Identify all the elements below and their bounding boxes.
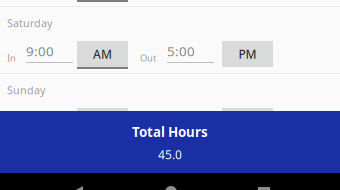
button[interactable]: Home [165,186,177,190]
staticText: AM [93,46,112,62]
staticText: 5:00 [167,42,195,60]
button[interactable]: AM [77,41,128,69]
staticText: Out [140,119,156,131]
staticText: Total Hours [132,123,208,141]
staticText: Sunday [7,83,45,97]
button[interactable]: PM [222,108,273,136]
button[interactable]: Back [74,186,83,190]
staticText: Saturday [7,16,52,30]
staticText: 9:00 [26,109,54,127]
staticText: PM [238,46,256,62]
staticText: 5:00 [167,109,195,127]
staticText: In [7,52,16,64]
button[interactable]: AM [77,108,128,136]
staticText: Out [140,52,156,64]
staticText: 9:00 [26,42,54,60]
button[interactable]: PM [222,41,273,69]
staticText: 45.0 [158,147,182,163]
